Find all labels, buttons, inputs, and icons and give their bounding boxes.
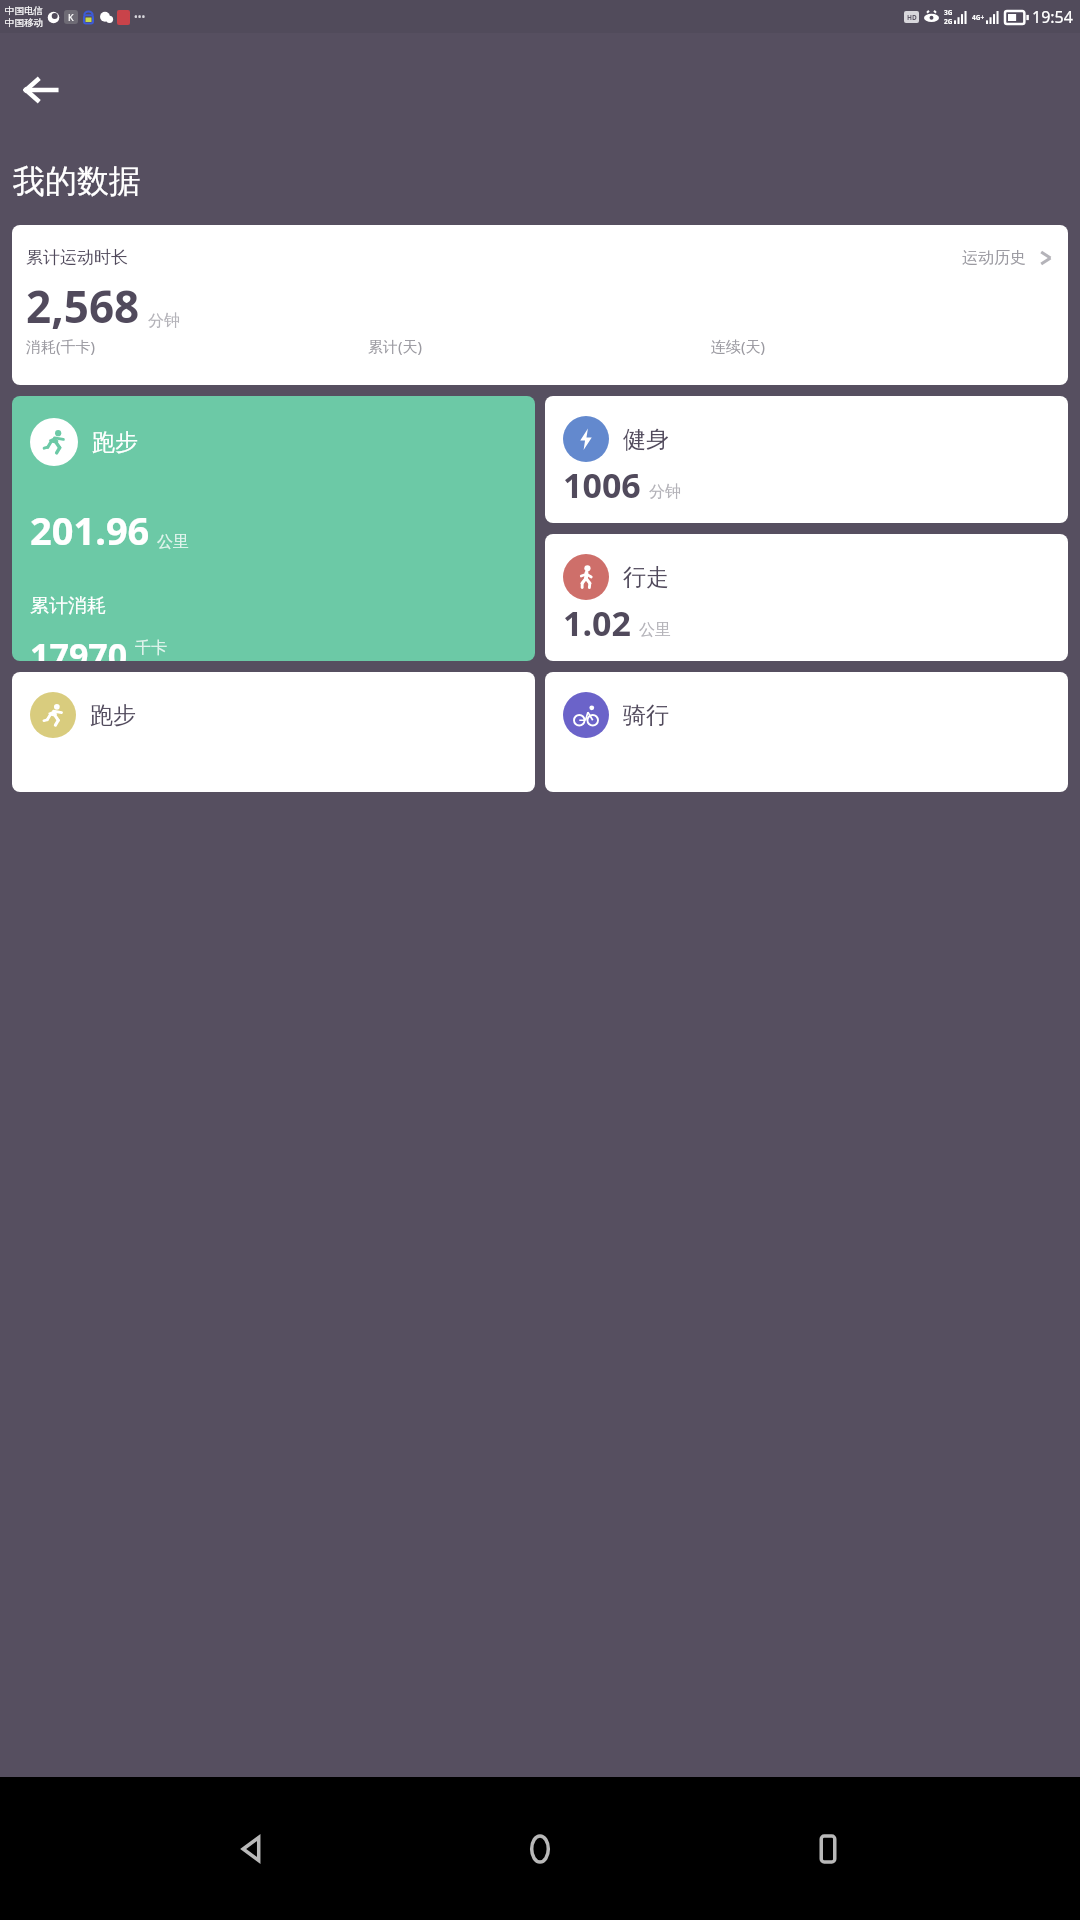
staticText: 运动历史 (962, 248, 1026, 268)
staticText: 4G+ (972, 13, 985, 22)
staticText: 连续(天) (711, 336, 766, 356)
staticText: 公里 (639, 620, 671, 640)
staticText: 消耗(千卡) (26, 336, 96, 356)
staticText: 健身 (623, 425, 669, 454)
staticText: 行走 (623, 563, 669, 592)
button[interactable]: Back (218, 1814, 288, 1884)
staticText: 分钟 (148, 311, 180, 331)
staticText: 累计消耗 (30, 594, 106, 618)
staticText: 2,568 (26, 276, 140, 336)
staticText: 跑步 (90, 701, 136, 730)
staticText: 千卡 (135, 638, 167, 658)
staticText: 累计(天) (368, 336, 423, 356)
staticText: 中国移动 (5, 17, 43, 29)
staticText: 分钟 (649, 482, 681, 502)
staticText: 1006 (563, 462, 641, 505)
button[interactable]: 骑行 (545, 672, 1068, 792)
button[interactable]: 行走 (545, 534, 1068, 661)
staticText: 中国电信 (5, 5, 43, 17)
staticText: 1.02 (563, 600, 631, 643)
button[interactable]: 跑步 (12, 396, 535, 661)
staticText: 201.96 (30, 504, 150, 556)
button[interactable]: 健身 (545, 396, 1068, 523)
staticText: 我的数据 (13, 161, 141, 201)
staticText: HD (907, 13, 917, 22)
button[interactable]: 跑步 (12, 672, 535, 792)
staticText: 骑行 (623, 701, 669, 730)
staticText: ••• (134, 10, 146, 24)
staticText: 2G (944, 17, 953, 26)
button[interactable]: Back (10, 59, 72, 121)
staticText: 跑步 (92, 428, 138, 457)
staticText: 公里 (157, 532, 189, 552)
staticText: 3G (944, 8, 953, 17)
staticText: 17970 (30, 632, 128, 661)
staticText: 19:54 (1032, 6, 1073, 28)
staticText: 累计运动时长 (26, 247, 128, 268)
button[interactable]: Recent apps (793, 1814, 863, 1884)
button[interactable]: 累计运动时长 (12, 225, 1068, 385)
staticText: K (68, 11, 74, 23)
button[interactable]: Home (505, 1814, 575, 1884)
